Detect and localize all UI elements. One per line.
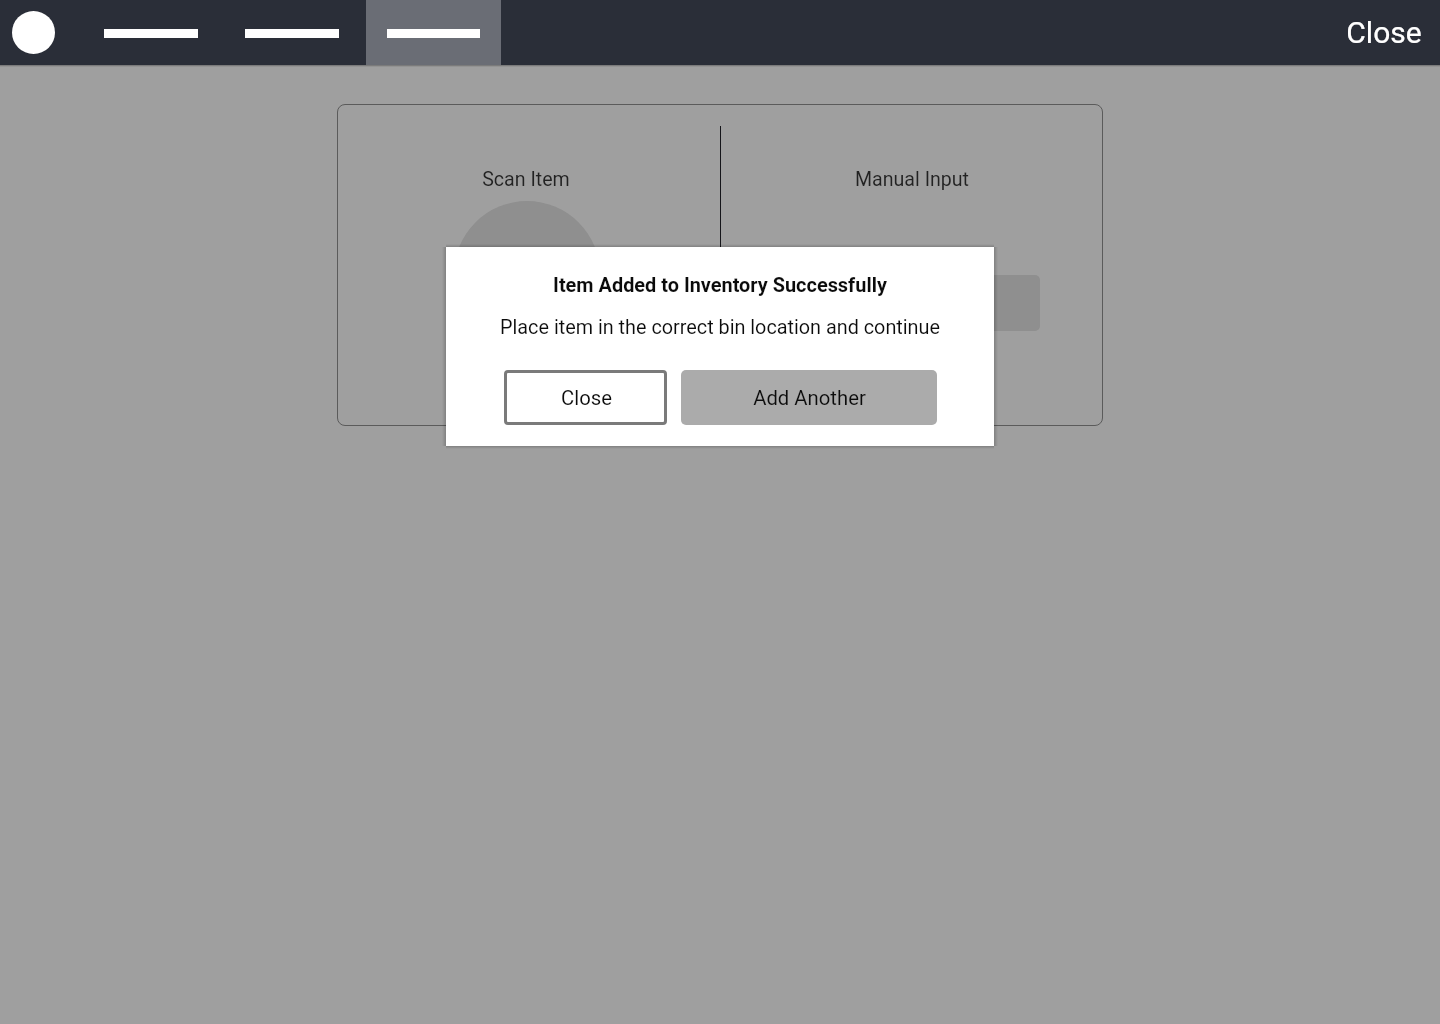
button[interactable]: Close (504, 370, 667, 425)
button[interactable]: Close (1346, 0, 1422, 65)
button[interactable]: Scan item with camera (454, 201, 600, 347)
staticText: Manual Input (837, 168, 987, 191)
staticText: Item Added to Inventory Successfully (553, 274, 887, 297)
button[interactable]: Item code field (784, 275, 1040, 331)
staticText: Close (561, 386, 612, 410)
button[interactable]: Inventory (80, 0, 221, 65)
button[interactable]: Add Another (681, 370, 937, 425)
staticText: Place item in the correct bin location a… (500, 316, 940, 339)
button[interactable]: Orders (221, 0, 362, 65)
button[interactable]: Home (12, 11, 55, 54)
staticText: Add Another (753, 386, 866, 410)
button[interactable]: Receiving, selected (366, 0, 501, 65)
staticText: Close (1346, 15, 1422, 50)
staticText: Scan Item (479, 168, 573, 191)
